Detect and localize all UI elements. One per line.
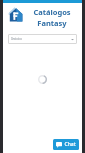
button[interactable]: Catálogos Fantasy logo <box>8 6 78 28</box>
other: Catálogos Fantasy logo <box>8 7 23 22</box>
staticText: Fantasy <box>37 18 67 28</box>
other: Loading <box>38 75 47 84</box>
staticText: Catálogos <box>33 7 71 17</box>
staticText: Chat <box>64 141 76 148</box>
button[interactable]: Chat <box>53 139 79 150</box>
button[interactable]: Inicio <box>8 34 77 44</box>
staticText: Inicio <box>11 36 22 42</box>
